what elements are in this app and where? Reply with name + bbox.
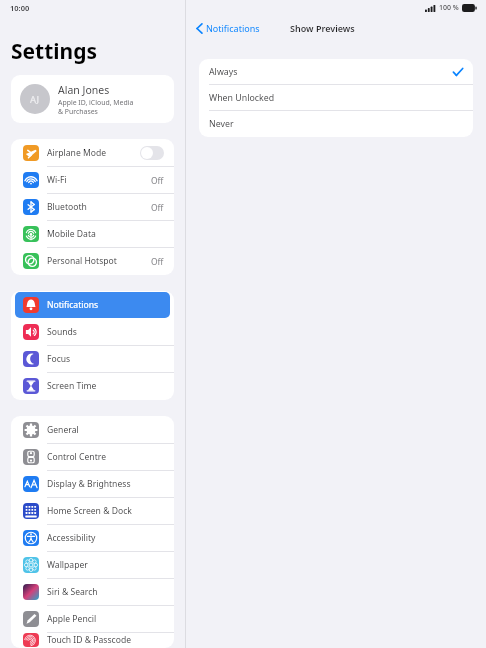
staticText: Bluetooth <box>47 201 151 213</box>
staticText: Wallpaper <box>47 559 164 571</box>
staticText: Accessibility <box>47 532 164 544</box>
staticText: Notifications <box>206 22 260 34</box>
button[interactable]: Airplane Mode toggle <box>140 146 164 160</box>
staticText: Siri & Search <box>47 586 164 598</box>
staticText: Off <box>151 202 164 213</box>
staticText: Notifications <box>47 299 160 311</box>
button[interactable]: Apple Pencil <box>11 606 174 632</box>
staticText: Touch ID & Passcode <box>47 634 164 646</box>
button[interactable]: Siri & Search <box>11 579 174 605</box>
button[interactable]: Display & Brightness <box>11 471 174 497</box>
staticText: Display & Brightness <box>47 478 164 490</box>
staticText: Home Screen & Dock <box>47 505 164 517</box>
staticText: Show Previews <box>290 22 355 34</box>
button[interactable]: General <box>11 417 174 443</box>
button[interactable]: Control Centre <box>11 444 174 470</box>
staticText: Always <box>209 66 453 78</box>
button[interactable]: Bluetooth <box>11 194 174 220</box>
button[interactable]: Airplane Mode <box>11 140 174 166</box>
button[interactable]: Screen Time <box>11 373 174 399</box>
staticText: Control Centre <box>47 451 164 463</box>
button[interactable]: Sounds <box>11 319 174 345</box>
staticText: 10:00 <box>10 3 30 13</box>
staticText: 100 % <box>439 3 459 13</box>
button[interactable]: When Unlocked <box>199 85 473 111</box>
button[interactable]: AJ <box>11 75 174 123</box>
button[interactable]: Personal Hotspot <box>11 248 174 274</box>
staticText: Apple ID, iCloud, Media & Purchases <box>58 98 134 116</box>
staticText: Off <box>151 256 164 267</box>
staticText: Focus <box>47 353 164 365</box>
staticText: General <box>47 424 164 436</box>
staticText: Settings <box>11 37 98 66</box>
staticText: Screen Time <box>47 380 164 392</box>
staticText: Sounds <box>47 326 164 338</box>
staticText: When Unlocked <box>209 92 463 104</box>
button[interactable]: Accessibility <box>11 525 174 551</box>
button[interactable]: Never <box>199 111 473 137</box>
staticText: Mobile Data <box>47 228 164 240</box>
staticText: Airplane Mode <box>47 147 140 159</box>
staticText: Wi-Fi <box>47 174 151 186</box>
button[interactable]: Focus <box>11 346 174 372</box>
staticText: Alan Jones <box>58 83 110 97</box>
staticText: Personal Hotspot <box>47 255 151 267</box>
button[interactable]: Wi-Fi <box>11 167 174 193</box>
staticText: Off <box>151 175 164 186</box>
button[interactable]: Notifications <box>194 20 262 36</box>
staticText: Apple Pencil <box>47 613 164 625</box>
button[interactable]: Touch ID & Passcode <box>11 633 174 647</box>
button[interactable]: Always <box>199 59 473 85</box>
staticText: AJ <box>30 93 40 106</box>
staticText: Never <box>209 118 463 130</box>
button[interactable]: Wallpaper <box>11 552 174 578</box>
button[interactable]: Notifications <box>15 292 170 318</box>
button[interactable]: Mobile Data <box>11 221 174 247</box>
button[interactable]: Home Screen & Dock <box>11 498 174 524</box>
